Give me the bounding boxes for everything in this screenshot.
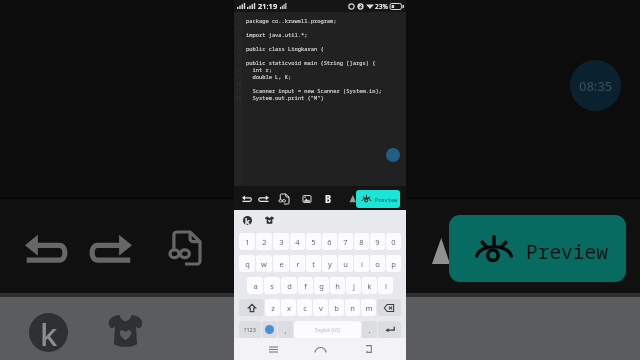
staticText: Preview [526,238,608,265]
staticText: Scanner input = new Scanner (System.in); [246,87,382,94]
button[interactable]: Undo [242,195,252,202]
button[interactable]: w [256,255,272,272]
button[interactable]: s [264,277,280,294]
staticText: 6 [327,237,332,247]
staticText: o [375,259,380,269]
staticText: ?123 [244,326,256,333]
button[interactable]: 5 [306,233,321,250]
button[interactable]: y [322,255,337,272]
button[interactable]: 0 [386,233,401,250]
staticText: 4 [237,39,240,44]
button[interactable]: Shift [239,299,264,316]
staticText: 2 [262,237,267,247]
button[interactable]: Keyboard app [29,313,68,352]
staticText: double L, K; [246,73,292,80]
button[interactable]: a [247,277,263,294]
button[interactable]: Home [311,340,329,358]
staticText: public class Lingkaran { [246,45,324,52]
staticText: int r; [246,66,272,73]
button[interactable]: Insert image [302,194,312,204]
button[interactable]: Space [294,321,361,338]
button[interactable]: Undo [25,233,68,263]
button[interactable]: c [297,299,312,316]
button[interactable]: m [361,299,376,316]
staticText: h [335,281,340,291]
button[interactable]: 1 [239,233,255,250]
staticText: k [40,313,58,352]
button[interactable]: Back [359,340,377,358]
button[interactable]: k [362,277,377,294]
button[interactable]: , [278,321,293,338]
button[interactable]: Redo [89,233,132,263]
button[interactable] [348,194,356,203]
button[interactable]: e [273,255,289,272]
button[interactable]: d [281,277,297,294]
staticText: x [287,303,291,313]
button[interactable]: v [313,299,328,316]
button[interactable]: x [281,299,296,316]
button[interactable]: p [386,255,401,272]
button[interactable]: u [338,255,353,272]
button[interactable]: h [330,277,345,294]
staticText: 4 [295,237,300,247]
staticText: 9 [237,74,240,79]
staticText: 23% [375,2,388,11]
staticText: B [325,192,331,204]
button[interactable]: Open file [279,194,289,204]
button[interactable]: ?123 [239,321,261,338]
button[interactable]: j [346,277,361,294]
button[interactable]: Keyboard settings [243,216,252,225]
staticText: b [334,303,339,313]
staticText: q [245,259,250,269]
button[interactable]: q [239,255,255,272]
button[interactable]: 7 [338,233,353,250]
button[interactable]: 3 [273,233,289,250]
staticText: s [270,281,274,291]
button[interactable]: Enter [378,321,401,338]
button[interactable]: t [306,255,321,272]
button[interactable]: Emoji [262,321,277,338]
button[interactable]: o [370,255,385,272]
staticText: 3 [237,32,240,37]
button[interactable]: Preview [356,190,400,208]
button[interactable]: Theme [108,313,143,347]
button[interactable]: 8 [354,233,369,250]
staticText: 13 [236,102,241,107]
staticText: v [319,303,323,313]
button[interactable]: 6 [322,233,337,250]
staticText: e [279,259,284,269]
button[interactable]: Theme [265,216,274,224]
staticText: 1 [237,18,240,23]
staticText: 12 [236,95,241,100]
button[interactable]: 2 [256,233,272,250]
staticText: z [271,303,275,313]
button[interactable]: i [354,255,369,272]
staticText: p [391,259,396,269]
staticText: r [296,259,300,269]
button[interactable]: z [265,299,280,316]
staticText: 7 [343,237,348,247]
button[interactable]: b [329,299,344,316]
button[interactable]: Preview [449,215,626,282]
button[interactable]: 9 [370,233,385,250]
staticText: , [284,325,287,335]
button[interactable]: r [290,255,305,272]
button[interactable]: Run [386,148,400,162]
button[interactable]: Backspace [377,299,401,316]
button[interactable]: B [322,192,333,204]
staticText: 8 [359,237,364,247]
button[interactable]: Open file [170,232,200,264]
button[interactable]: l [378,277,393,294]
staticText: a [253,281,258,291]
button[interactable]: . [362,321,377,338]
button[interactable]: 4 [290,233,305,250]
button[interactable]: Recent apps [264,340,282,358]
button[interactable]: g [314,277,329,294]
button[interactable]: n [345,299,360,316]
staticText: 6 [237,53,240,58]
staticText: k [245,216,250,225]
staticText: k [367,281,372,291]
button[interactable]: Redo [258,195,269,202]
button[interactable]: f [298,277,313,294]
